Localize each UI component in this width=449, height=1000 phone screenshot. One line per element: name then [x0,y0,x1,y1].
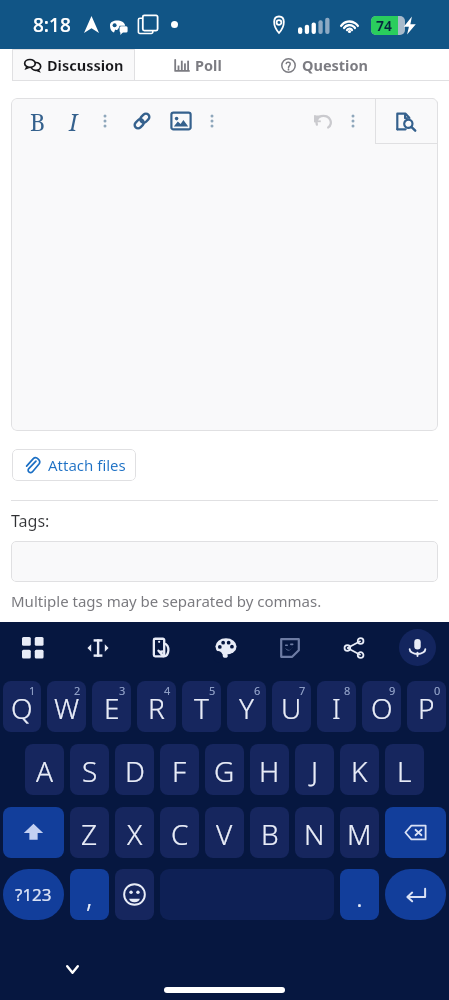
staticText: Discussion [47,55,124,75]
staticText: I [332,689,341,727]
button[interactable]: Hide keyboard [56,953,88,985]
button[interactable]: R [137,681,176,732]
staticText: 2 [74,683,81,698]
button[interactable]: Question [260,49,388,81]
button[interactable]: Tags input [11,541,438,582]
staticText: 74 [376,16,393,35]
button[interactable]: Clipboard [143,629,180,666]
button[interactable]: G [205,744,244,795]
button[interactable]: More text options [88,98,122,144]
staticText: H [259,752,280,790]
button[interactable]: Italic [56,98,90,144]
staticText: Q [11,689,33,727]
button[interactable]: Backspace [385,807,446,858]
staticText: N [304,815,325,853]
staticText: T [194,689,209,727]
button[interactable]: X [115,807,154,858]
staticText: L [397,752,412,790]
staticText: A [36,752,54,790]
staticText: 0 [434,683,441,698]
button[interactable]: Y [227,681,266,732]
button[interactable]: Voice input [399,629,436,666]
staticText: 3 [119,683,126,698]
button[interactable]: F [160,744,199,795]
button[interactable]: U [272,681,311,732]
staticText: B [30,106,46,137]
staticText: O [371,689,393,727]
staticText: 7 [299,683,306,698]
staticText: 5 [209,683,216,698]
button[interactable]: Emoji [115,869,154,920]
button[interactable]: Stickers [271,629,308,666]
staticText: 9 [389,683,396,698]
staticText: 6 [254,683,261,698]
button[interactable]: Bold [21,98,55,144]
button[interactable]: Attach files [12,449,136,481]
button[interactable]: O [362,681,401,732]
staticText: W [54,689,80,727]
staticText: . [356,877,363,915]
button[interactable]: T [182,681,221,732]
button[interactable]: J [295,744,334,795]
button[interactable]: Insert image [164,98,198,144]
staticText: R [148,689,165,727]
staticText: E [104,689,120,727]
staticText: Attach files [48,455,126,475]
staticText: 8 [344,683,351,698]
staticText: Multiple tags may be separated by commas… [11,591,322,611]
button[interactable]: I [317,681,356,732]
staticText: Y [239,689,254,727]
button[interactable]: Q [3,681,41,732]
button[interactable]: Discussion [12,49,135,81]
button[interactable]: A [25,744,64,795]
button[interactable]: H [250,744,289,795]
button[interactable]: N [295,807,334,858]
staticText: M [347,815,372,853]
staticText: P [418,689,435,727]
button[interactable]: V [205,807,244,858]
button[interactable]: S [70,744,109,795]
staticText: Question [302,55,368,75]
button[interactable]: Z [70,807,109,858]
button[interactable]: Preview [375,98,438,144]
staticText: S [82,752,98,790]
button[interactable]: M [340,807,379,858]
staticText: 8:18 [33,12,71,38]
button[interactable]: Share [335,629,372,666]
staticText: 4 [164,683,171,698]
button[interactable]: B [250,807,289,858]
button[interactable]: More insert options [195,98,229,144]
staticText: B [261,815,279,853]
button[interactable]: . [340,869,379,920]
button[interactable]: P [407,681,446,732]
button[interactable]: Insert link [125,98,159,144]
button[interactable]: Undo [305,98,339,144]
button[interactable]: Enter [385,869,446,920]
button[interactable]: , [70,869,109,920]
staticText: ?123 [15,883,52,906]
button[interactable]: Text edit [79,629,116,666]
button[interactable]: L [385,744,424,795]
button[interactable]: Shift [3,807,64,858]
button[interactable]: K [340,744,379,795]
button[interactable]: W [47,681,86,732]
staticText: V [216,815,233,853]
staticText: D [125,752,145,790]
staticText: F [172,752,187,790]
staticText: G [214,752,235,790]
staticText: Tags: [11,510,50,532]
staticText: K [351,752,368,790]
button[interactable]: More options [336,98,370,144]
staticText: I [69,106,78,137]
button[interactable]: Apps [14,629,51,666]
button[interactable]: ?123 [3,869,64,920]
button[interactable]: Poll [135,49,260,81]
staticText: 1 [29,683,36,698]
staticText: X [127,815,143,853]
button[interactable]: D [115,744,154,795]
button[interactable]: E [92,681,131,732]
button[interactable]: C [160,807,199,858]
staticText: Poll [195,55,222,75]
button[interactable]: Theme [207,629,244,666]
